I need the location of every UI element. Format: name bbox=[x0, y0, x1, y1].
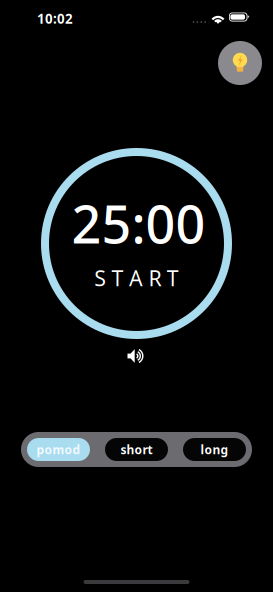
staticText: 25:00 bbox=[71, 189, 205, 258]
button[interactable]: Toggle theme bbox=[218, 41, 262, 85]
button[interactable]: short bbox=[105, 438, 168, 461]
staticText: 10:02 bbox=[37, 10, 73, 27]
button[interactable]: long bbox=[183, 438, 246, 461]
staticText: S T A R T bbox=[94, 264, 179, 292]
staticText: long bbox=[200, 441, 228, 457]
staticText: short bbox=[120, 441, 152, 457]
button[interactable]: pomod bbox=[27, 438, 90, 461]
staticText: pomod bbox=[36, 441, 80, 457]
